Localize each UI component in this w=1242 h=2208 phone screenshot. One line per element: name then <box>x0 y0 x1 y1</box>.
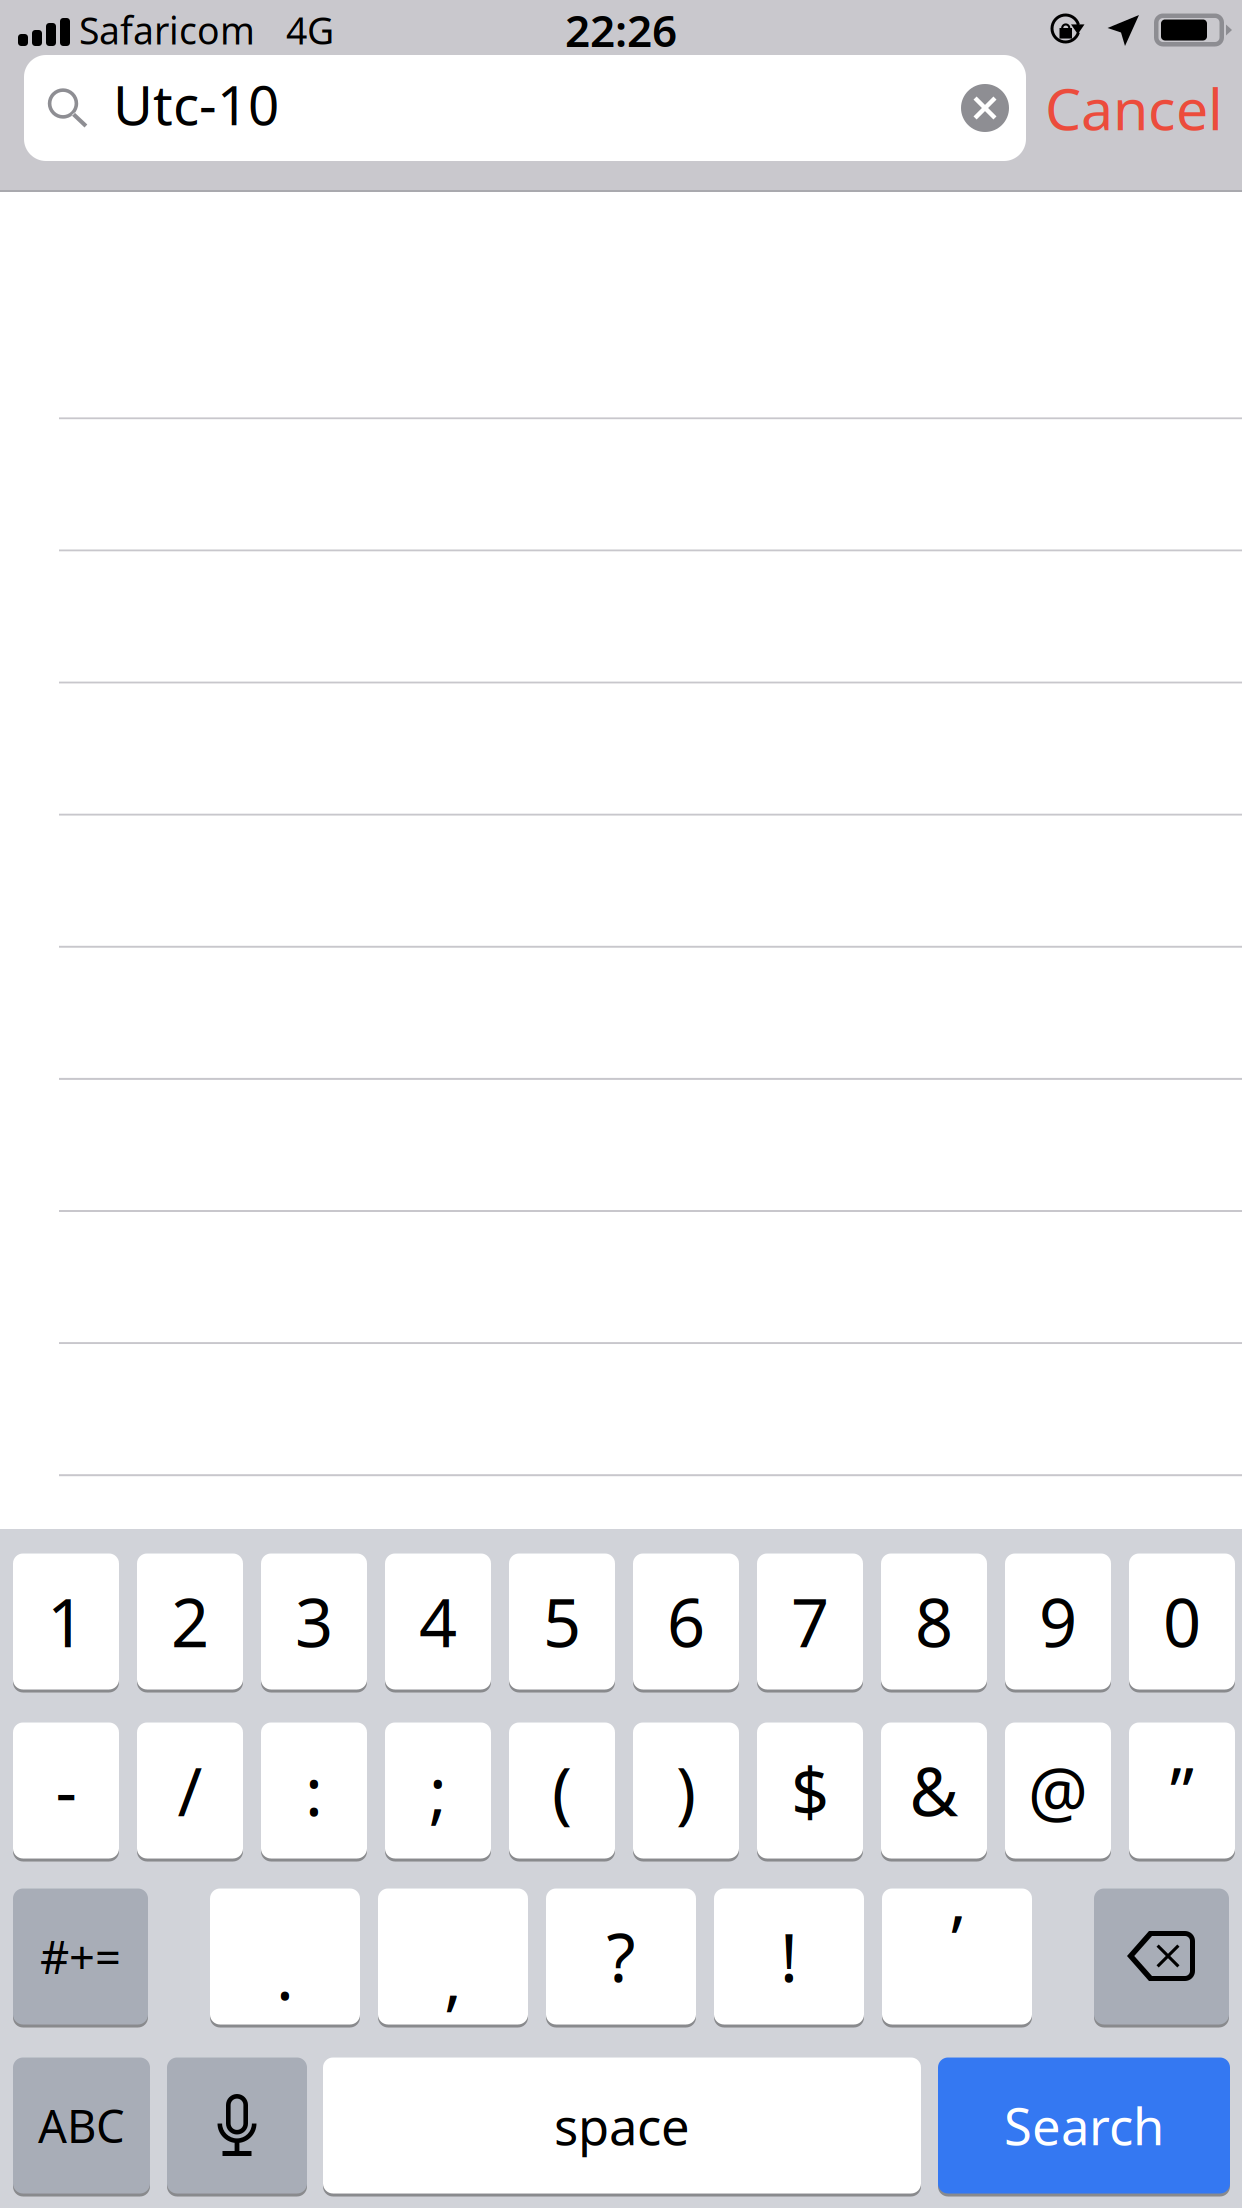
staticText: 22:26 <box>565 1 677 59</box>
staticText: space <box>554 2092 690 2159</box>
button[interactable]: 7 <box>757 1552 863 1691</box>
button[interactable]: ? <box>546 1887 696 2026</box>
button[interactable] <box>0 1080 1242 1212</box>
button[interactable]: ” <box>1129 1721 1235 1860</box>
staticText: ABC <box>38 2095 125 2156</box>
staticText: #+= <box>40 1926 121 1987</box>
button[interactable]: , <box>378 1887 528 2026</box>
button[interactable] <box>0 419 1242 551</box>
button[interactable] <box>0 287 1242 419</box>
staticText: @ <box>1028 1746 1088 1835</box>
button[interactable]: Delete <box>1094 1887 1229 2026</box>
staticText: 7 <box>791 1577 829 1666</box>
staticText: Utc-10 <box>113 68 279 140</box>
button[interactable]: Search <box>938 2056 1230 2195</box>
button[interactable]: ’ <box>882 1887 1032 2026</box>
staticText: : <box>305 1746 323 1835</box>
staticText: ” <box>1170 1746 1194 1835</box>
staticText: 0 <box>1163 1577 1201 1666</box>
staticText: 9 <box>1039 1577 1077 1666</box>
button[interactable] <box>0 1344 1242 1476</box>
button[interactable]: . <box>210 1887 360 2026</box>
staticText: ’ <box>951 1894 963 1983</box>
button[interactable]: ABC <box>13 2056 150 2195</box>
button[interactable]: - <box>13 1721 119 1860</box>
staticText: 2 <box>171 1577 209 1666</box>
staticText: 4G <box>286 5 334 55</box>
button[interactable]: 6 <box>633 1552 739 1691</box>
staticText: & <box>909 1746 958 1835</box>
button[interactable]: 0 <box>1129 1552 1235 1691</box>
staticText: 3 <box>295 1577 333 1666</box>
button[interactable]: 1 <box>13 1552 119 1691</box>
button[interactable]: Cancel <box>1026 55 1242 161</box>
staticText: 1 <box>47 1577 85 1666</box>
button[interactable] <box>0 948 1242 1080</box>
staticText: 5 <box>543 1577 581 1666</box>
staticText: Safaricom <box>79 5 255 55</box>
button[interactable] <box>0 684 1242 816</box>
staticText: ! <box>780 1912 798 2001</box>
button[interactable]: $ <box>757 1721 863 1860</box>
staticText: . <box>276 1930 294 2019</box>
button[interactable]: @ <box>1005 1721 1111 1860</box>
button[interactable]: 8 <box>881 1552 987 1691</box>
button[interactable]: 4 <box>385 1552 491 1691</box>
button[interactable]: : <box>261 1721 367 1860</box>
button[interactable]: & <box>881 1721 987 1860</box>
staticText: 6 <box>667 1577 705 1666</box>
button[interactable]: ( <box>509 1721 615 1860</box>
button[interactable] <box>0 816 1242 948</box>
button[interactable]: 9 <box>1005 1552 1111 1691</box>
button[interactable]: Dictate <box>167 2056 307 2195</box>
staticText: Cancel <box>1045 70 1223 146</box>
button[interactable]: Clear text <box>950 73 1020 143</box>
button[interactable]: ) <box>633 1721 739 1860</box>
staticText: ? <box>606 1912 635 2001</box>
staticText: - <box>55 1746 76 1835</box>
button[interactable]: 3 <box>261 1552 367 1691</box>
staticText: ) <box>676 1746 696 1835</box>
button[interactable]: / <box>137 1721 243 1860</box>
button[interactable]: 5 <box>509 1552 615 1691</box>
staticText: / <box>177 1746 202 1835</box>
staticText: $ <box>791 1746 829 1835</box>
staticText: , <box>444 1933 462 2022</box>
staticText: ( <box>552 1746 572 1835</box>
button[interactable] <box>0 552 1242 684</box>
button[interactable]: 2 <box>137 1552 243 1691</box>
staticText: 8 <box>915 1577 953 1666</box>
staticText: 4 <box>419 1577 457 1666</box>
button[interactable]: ! <box>714 1887 864 2026</box>
button[interactable] <box>0 1212 1242 1344</box>
button[interactable]: ; <box>385 1721 491 1860</box>
staticText: Search <box>1004 2092 1164 2159</box>
staticText: ; <box>429 1746 447 1835</box>
button[interactable]: #+= <box>13 1887 148 2026</box>
button[interactable]: space <box>323 2056 921 2195</box>
